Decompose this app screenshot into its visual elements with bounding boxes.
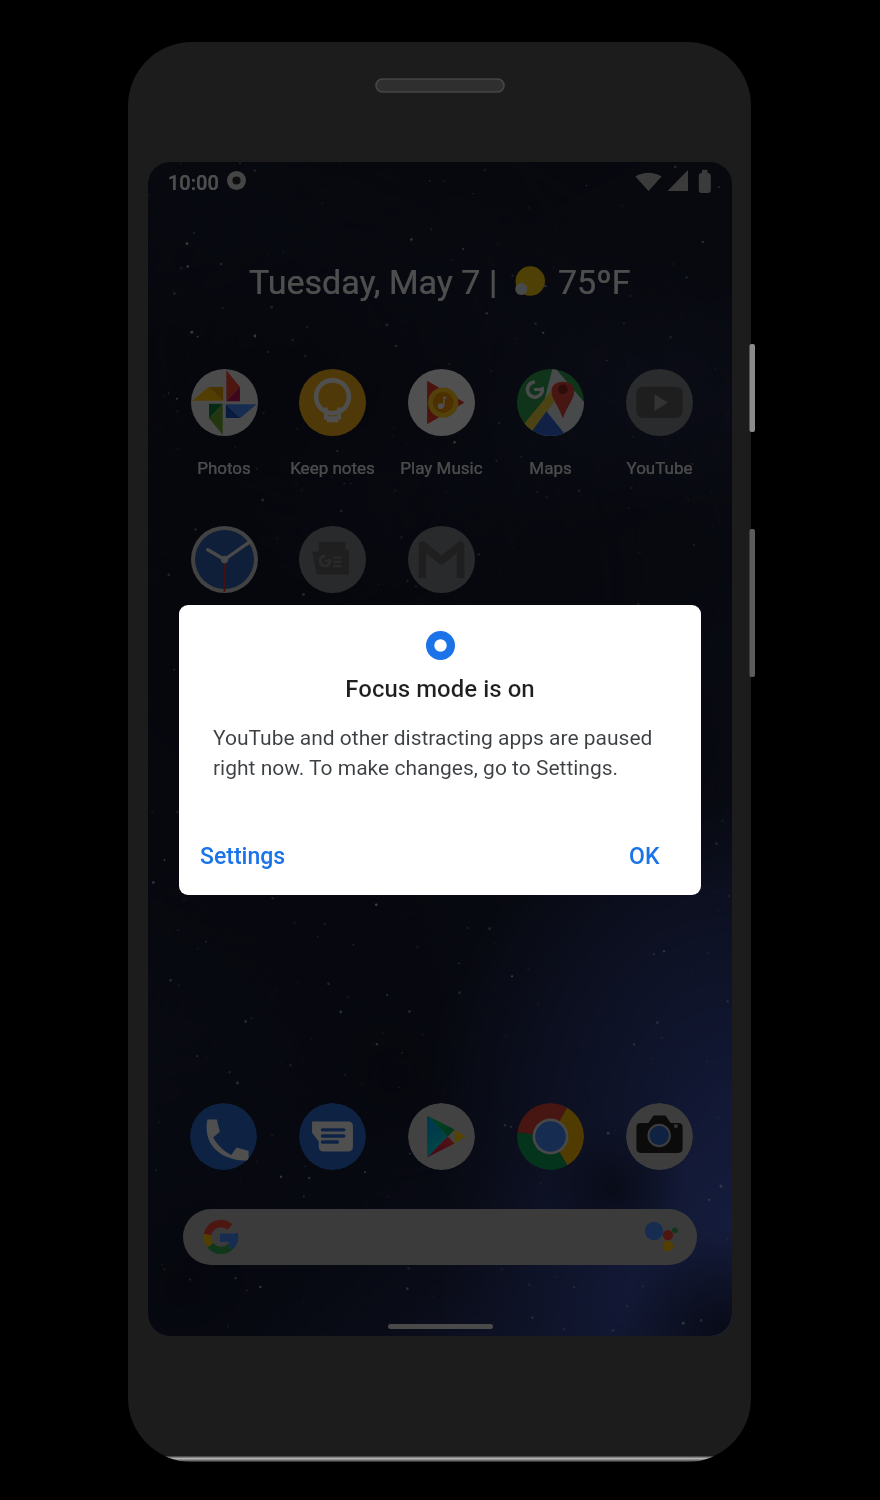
staticText: OK: [629, 843, 660, 870]
button[interactable]: Maps: [496, 369, 604, 478]
staticText: YouTube and other distracting apps are p…: [213, 726, 653, 780]
staticText: Keep notes: [290, 458, 375, 478]
button[interactable]: Google News: [278, 526, 386, 593]
staticText: YouTube: [626, 458, 693, 478]
staticText: 75ºF: [558, 262, 631, 302]
button[interactable]: Photos: [170, 369, 278, 478]
button[interactable]: Phone: [190, 1103, 257, 1170]
button[interactable]: Chrome: [517, 1103, 584, 1170]
button[interactable]: Google search: [183, 1209, 697, 1265]
button[interactable]: YouTube: [605, 369, 713, 478]
button[interactable]: Camera: [626, 1103, 693, 1170]
button[interactable]: Play Store: [408, 1103, 475, 1170]
staticText: 10:00: [168, 171, 219, 194]
button[interactable]: Gmail: [387, 526, 495, 593]
staticText: Settings: [200, 843, 286, 870]
button[interactable]: OK: [619, 832, 670, 881]
staticText: Maps: [529, 458, 572, 478]
button[interactable]: Play Music: [387, 369, 495, 478]
staticText: Photos: [197, 458, 251, 478]
button[interactable]: Clock: [170, 526, 278, 593]
staticText: Play Music: [400, 458, 483, 478]
button[interactable]: Settings: [190, 832, 296, 881]
staticText: Focus mode is on: [179, 675, 701, 703]
staticText: Tuesday, May 7 |: [249, 262, 498, 302]
button[interactable]: Keep notes: [278, 369, 386, 478]
button[interactable]: Messages: [299, 1103, 366, 1170]
